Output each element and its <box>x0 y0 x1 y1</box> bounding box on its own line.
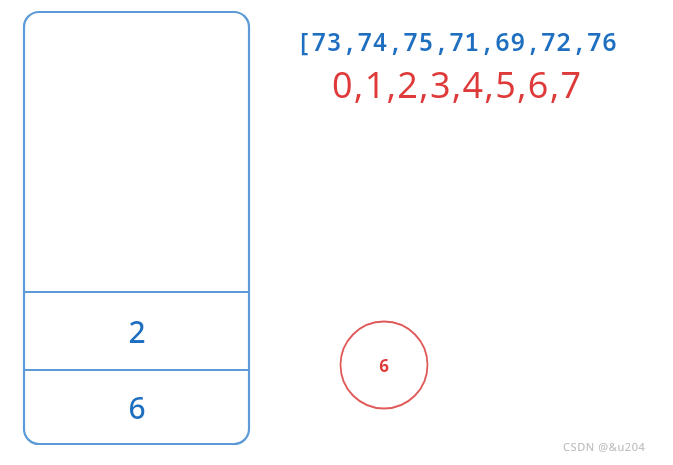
staticText: [73,74,75,71,69,72,76,73] <box>296 24 628 56</box>
button[interactable]: 2 <box>24 292 249 370</box>
button[interactable]: 6 <box>24 370 249 444</box>
staticText: 2 <box>128 311 146 352</box>
staticText: 6 <box>379 354 389 377</box>
staticText: CSDN @&u204 <box>563 439 646 454</box>
staticText: 6 <box>128 387 146 428</box>
staticText: 0,1,2,3,4,5,6,7 <box>332 60 583 108</box>
button[interactable]: Result 6 <box>339 320 429 410</box>
